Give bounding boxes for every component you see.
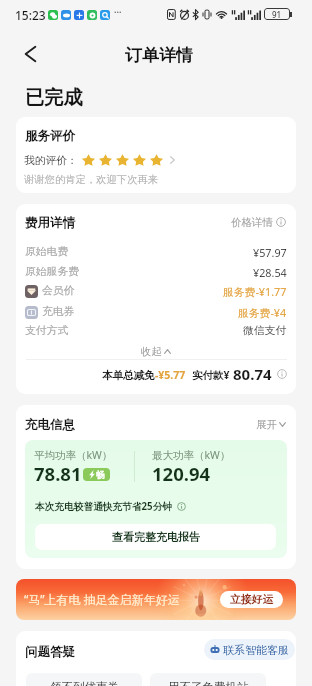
staticText: 会员价 (42, 284, 75, 298)
staticText: -¥5.77 (155, 368, 186, 382)
staticText: 微信支付 (243, 324, 287, 338)
staticText: 费用详情 (25, 215, 75, 231)
button[interactable]: 收起 (126, 343, 186, 359)
staticText: 原始电费 (25, 245, 69, 259)
staticText: 78.81 (34, 461, 82, 486)
staticText: ¥57.97 (253, 245, 287, 260)
button[interactable]: “马”上有电 抽足金启新年好运 (16, 579, 296, 620)
staticText: 畅 (96, 469, 105, 480)
staticText: 我的评价： (24, 154, 78, 167)
button[interactable]: Back (13, 37, 47, 71)
staticText: 最大功率（kW） (152, 448, 231, 462)
staticText: 原始服务费 (25, 265, 79, 279)
staticText: 收起 (141, 345, 162, 358)
staticText: 查看完整充电报告 (112, 530, 200, 544)
staticText: ··· (114, 5, 122, 17)
staticText: 91 (272, 9, 282, 20)
staticText: 本单总减免 (102, 369, 155, 382)
button[interactable]: 用不了免费机站 (150, 673, 266, 686)
staticText: 谢谢您的肯定，欢迎下次再来 (24, 173, 158, 186)
staticText: 充电券 (42, 305, 75, 319)
staticText: 支付方式 (25, 324, 69, 338)
staticText: 立接好运 (230, 593, 274, 607)
staticText: 领不到优惠券 (50, 680, 119, 686)
staticText: 服务费-¥4 (238, 305, 287, 320)
staticText: 80.74 (233, 364, 272, 384)
staticText: 问题答疑 (25, 644, 75, 660)
staticText: 订单详情 (125, 45, 193, 66)
button[interactable]: 联系智能客服 (204, 639, 295, 660)
button[interactable]: 查看完整充电报告 (35, 524, 276, 550)
staticText: 本次充电较普通快充节省25分钟 (35, 500, 173, 513)
button[interactable]: 领不到优惠券 (26, 673, 142, 686)
staticText: 充电信息 (25, 417, 75, 433)
button[interactable]: 立接好运 (220, 591, 283, 608)
staticText: 120.94 (152, 461, 211, 486)
staticText: 平均功率（kW） (34, 448, 113, 462)
staticText: 联系智能客服 (223, 643, 289, 657)
button[interactable]: 价格详情 (210, 214, 286, 230)
button[interactable]: 展开 (232, 416, 286, 432)
staticText: 展开 (256, 418, 277, 431)
staticText: 15:23 (15, 7, 46, 23)
button[interactable]: 我的评价： (24, 152, 188, 168)
staticText: ¥28.54 (253, 265, 287, 280)
staticText: 服务评价 (25, 128, 75, 144)
staticText: 已完成 (25, 86, 83, 110)
staticText: 服务费-¥1.77 (223, 284, 287, 299)
staticText: “马”上有电 抽足金启新年好运 (24, 591, 180, 607)
staticText: 用不了免费机站 (168, 680, 249, 686)
staticText: 价格详情 (231, 216, 273, 229)
staticText: 实付款¥ (192, 368, 230, 382)
